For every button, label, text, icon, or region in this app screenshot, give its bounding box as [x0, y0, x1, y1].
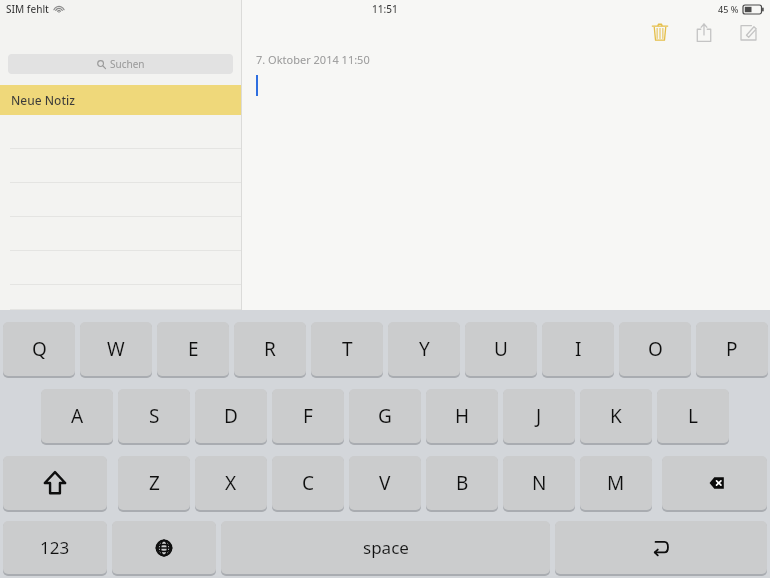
staticText: X: [225, 470, 237, 496]
staticText: I: [575, 336, 582, 362]
button[interactable]: T: [311, 322, 383, 377]
staticText: F: [303, 403, 313, 429]
staticText: Suchen: [110, 57, 145, 71]
staticText: N: [532, 470, 547, 496]
staticText: E: [188, 336, 199, 362]
button[interactable]: H: [426, 389, 498, 444]
button[interactable]: Next keyboard: [112, 521, 216, 575]
staticText: K: [610, 403, 622, 429]
button[interactable]: F: [272, 389, 344, 444]
staticText: 11:51: [372, 2, 398, 16]
button[interactable]: O: [619, 322, 691, 377]
staticText: V: [379, 470, 391, 496]
staticText: 45 %: [718, 3, 739, 15]
staticText: M: [607, 470, 625, 496]
staticText: R: [264, 336, 276, 362]
staticText: G: [378, 403, 392, 429]
staticText: Z: [149, 470, 160, 496]
button[interactable]: Share: [688, 16, 720, 48]
button[interactable]: E: [157, 322, 229, 377]
button[interactable]: K: [580, 389, 652, 444]
staticText: J: [536, 403, 542, 429]
button[interactable]: G: [349, 389, 421, 444]
button[interactable]: Compose: [732, 16, 764, 48]
button[interactable]: W: [80, 322, 152, 377]
button[interactable]: M: [580, 456, 652, 511]
staticText: D: [224, 403, 238, 429]
button[interactable]: A: [41, 389, 113, 444]
staticText: 7. Oktober 2014 11:50: [256, 52, 370, 67]
staticText: O: [648, 336, 663, 362]
staticText: 123: [40, 536, 70, 559]
staticText: C: [302, 470, 315, 496]
button[interactable]: Y: [388, 322, 460, 377]
staticText: P: [726, 336, 738, 362]
staticText: Q: [32, 336, 47, 362]
button[interactable]: C: [272, 456, 344, 511]
button[interactable]: Q: [3, 322, 75, 377]
button[interactable]: Z: [118, 456, 190, 511]
button[interactable]: N: [503, 456, 575, 511]
button[interactable]: P: [696, 322, 768, 377]
button[interactable]: D: [195, 389, 267, 444]
staticText: L: [688, 403, 698, 429]
staticText: B: [456, 470, 469, 496]
staticText: Neue Notiz: [11, 92, 75, 108]
button[interactable]: Shift: [3, 456, 107, 511]
staticText: S: [149, 403, 160, 429]
staticText: A: [71, 403, 84, 429]
button[interactable]: X: [195, 456, 267, 511]
button[interactable]: Neue Notiz: [0, 85, 241, 115]
button[interactable]: R: [234, 322, 306, 377]
staticText: W: [107, 336, 125, 362]
staticText: SIM fehlt: [6, 2, 49, 16]
button[interactable]: 123: [3, 521, 107, 575]
staticText: T: [342, 336, 353, 362]
button[interactable]: Suchen: [8, 54, 233, 74]
button[interactable]: I: [542, 322, 614, 377]
button[interactable]: Backspace: [662, 456, 767, 511]
button[interactable]: L: [657, 389, 729, 444]
button[interactable]: U: [465, 322, 537, 377]
staticText: space: [363, 536, 409, 559]
button[interactable]: space: [221, 521, 550, 575]
button[interactable]: Delete: [644, 16, 676, 48]
button[interactable]: Return: [555, 521, 767, 575]
button[interactable]: B: [426, 456, 498, 511]
button[interactable]: S: [118, 389, 190, 444]
staticText: U: [494, 336, 508, 362]
button[interactable]: V: [349, 456, 421, 511]
button[interactable]: J: [503, 389, 575, 444]
staticText: Y: [419, 336, 430, 362]
staticText: H: [455, 403, 470, 429]
